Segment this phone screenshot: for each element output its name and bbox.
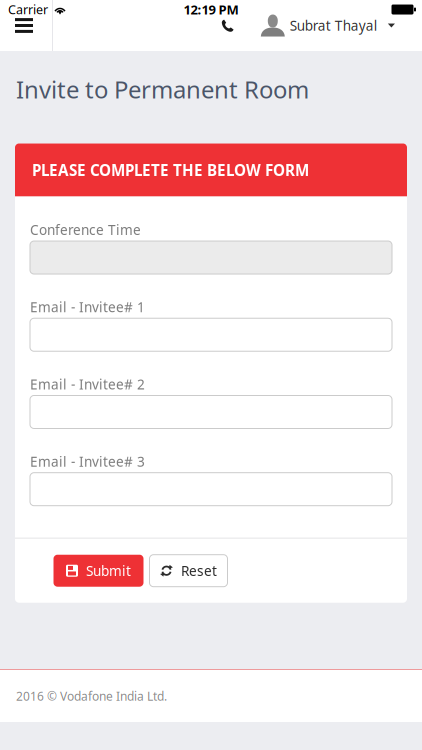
staticText: Email - Invitee# 2	[30, 375, 145, 393]
button[interactable]: Menu	[0, 0, 52, 51]
staticText: Reset	[181, 561, 217, 580]
button[interactable]: Call	[214, 11, 242, 39]
staticText: Subrat Thayal	[290, 16, 378, 35]
button[interactable]: Reset	[149, 555, 227, 587]
button[interactable]: Submit	[53, 555, 143, 587]
staticText: PLEASE COMPLETE THE BELOW FORM	[32, 160, 309, 180]
staticText: Email - Invitee# 3	[30, 452, 145, 471]
staticText: Invite to Permanent Room	[16, 73, 309, 105]
staticText: Carrier	[8, 1, 48, 18]
staticText: Conference Time	[30, 220, 141, 239]
staticText: Submit	[86, 561, 131, 580]
staticText: 2016 © Vodafone India Ltd.	[16, 688, 167, 704]
button[interactable]: Subrat Thayal	[261, 14, 422, 36]
staticText: Email - Invitee# 1	[30, 298, 145, 316]
staticText: 12:19 PM	[183, 1, 238, 18]
